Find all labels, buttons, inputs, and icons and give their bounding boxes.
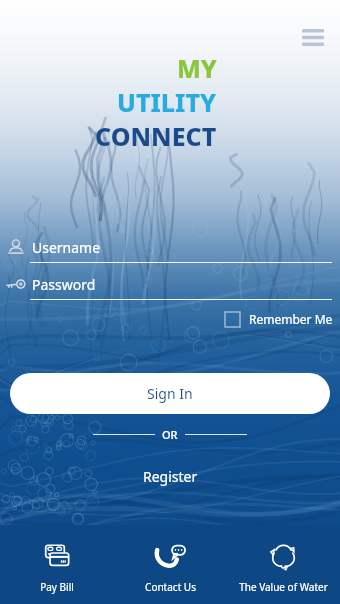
staticText: Register xyxy=(143,467,198,486)
button[interactable]: Password xyxy=(0,267,340,301)
button[interactable]: The Value of Water xyxy=(227,525,340,604)
staticText: Contact Us xyxy=(145,580,196,594)
staticText: Pay Bill xyxy=(40,580,74,594)
button[interactable]: Register xyxy=(117,461,224,492)
button[interactable]: Remember Me xyxy=(221,306,337,332)
button[interactable]: Menu xyxy=(294,18,332,56)
staticText: Username xyxy=(32,238,101,257)
staticText: OR xyxy=(162,427,178,442)
button[interactable]: Username xyxy=(0,230,340,264)
staticText: Password xyxy=(32,275,96,294)
staticText: UTILITY xyxy=(117,85,217,119)
staticText: MY xyxy=(177,51,217,85)
staticText: CONNECT xyxy=(95,119,217,153)
staticText: Remember Me xyxy=(249,311,333,327)
staticText: Sign In xyxy=(147,384,193,403)
button[interactable]: Pay Bill xyxy=(0,525,114,604)
button[interactable]: Contact Us xyxy=(114,525,227,604)
staticText: The Value of Water xyxy=(239,580,328,594)
button[interactable]: Sign In xyxy=(10,373,330,414)
